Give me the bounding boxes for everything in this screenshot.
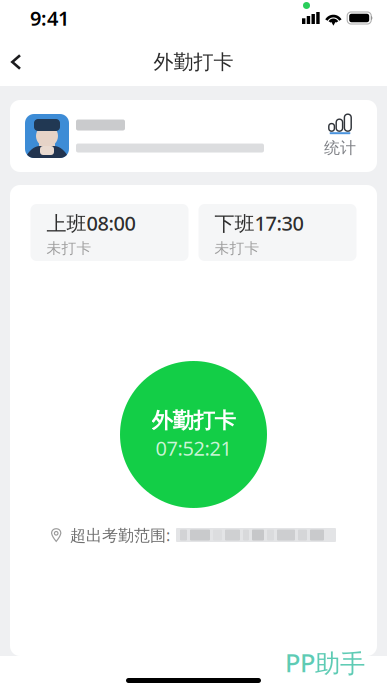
staticText: 9:41	[30, 5, 69, 31]
staticText: 外勤打卡	[153, 50, 233, 74]
button[interactable]: 统计	[310, 100, 377, 172]
button[interactable]: 外勤打卡	[120, 361, 267, 508]
staticText: PP助手	[285, 646, 365, 679]
staticText: 下班17:30	[214, 210, 303, 236]
button[interactable]	[10, 100, 310, 172]
button[interactable]: 上班08:00	[30, 204, 188, 261]
button[interactable]: 返回	[0, 46, 40, 84]
staticText: 统计	[324, 138, 356, 158]
staticText: 超出考勤范围:	[70, 524, 170, 546]
staticText: 未打卡	[214, 239, 259, 257]
staticText: 07:52:21	[155, 435, 231, 461]
button[interactable]: 下班17:30	[198, 204, 356, 261]
staticText: 上班08:00	[46, 210, 135, 236]
staticText: 未打卡	[46, 239, 91, 257]
staticText: 外勤打卡	[151, 408, 235, 434]
